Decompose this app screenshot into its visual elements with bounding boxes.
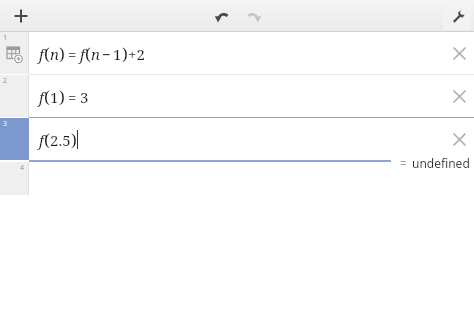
button[interactable]: Delete row 2: [445, 75, 474, 117]
staticText: =: [400, 155, 407, 171]
button[interactable]: Undo: [208, 2, 236, 30]
staticText: (: [44, 42, 50, 65]
staticText: 1: [3, 33, 8, 43]
button[interactable]: Delete row 1: [445, 32, 474, 74]
staticText: n: [91, 44, 100, 64]
staticText: (: [85, 42, 91, 65]
staticText: 4: [20, 163, 25, 173]
staticText: 3: [3, 119, 8, 129]
staticText: 1: [50, 87, 59, 107]
staticText: (: [44, 128, 50, 151]
button[interactable]: Delete row 3: [445, 118, 474, 160]
staticText: f: [39, 87, 44, 107]
staticText: −: [102, 44, 111, 64]
staticText: undefined: [412, 155, 470, 171]
staticText: =: [68, 87, 77, 107]
staticText: ): [59, 42, 65, 65]
staticText: =: [68, 44, 77, 64]
staticText: n: [50, 44, 59, 64]
button[interactable]: Add input: [6, 1, 36, 31]
button[interactable]: =: [391, 152, 474, 174]
staticText: 2: [3, 76, 8, 86]
staticText: f: [39, 130, 44, 150]
staticText: ): [71, 128, 77, 151]
button[interactable]: 2: [0, 75, 474, 117]
button[interactable]: Redo: [240, 2, 268, 30]
staticText: ): [59, 85, 65, 108]
staticText: ): [122, 42, 128, 65]
button[interactable]: Settings: [443, 2, 471, 30]
staticText: (: [44, 85, 50, 108]
staticText: 2.5: [50, 130, 71, 150]
button[interactable]: 3: [0, 118, 474, 160]
staticText: +2: [128, 44, 145, 64]
button[interactable]: 1: [0, 32, 474, 74]
button[interactable]: Create table of values: [5, 45, 25, 65]
staticText: 1: [113, 44, 122, 64]
staticText: 3: [80, 87, 89, 107]
staticText: f: [39, 44, 44, 64]
staticText: f: [80, 44, 85, 64]
